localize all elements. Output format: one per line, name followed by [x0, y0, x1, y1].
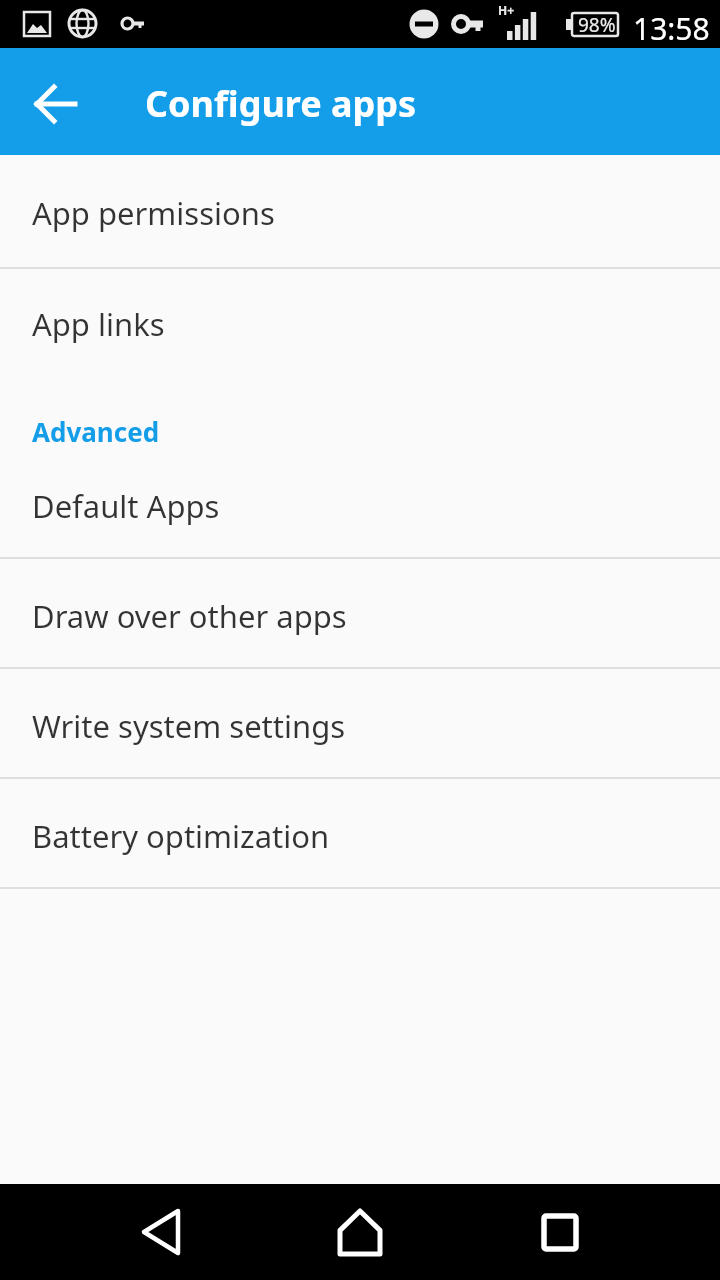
- staticText: Advanced: [32, 414, 160, 449]
- button[interactable]: [121, 1192, 201, 1272]
- staticText: App permissions: [32, 192, 275, 234]
- button[interactable]: Write system settings: [0, 669, 720, 777]
- staticText: Write system settings: [32, 705, 346, 747]
- staticText: Configure apps: [145, 79, 417, 128]
- staticText: App links: [32, 303, 165, 345]
- button[interactable]: [520, 1192, 600, 1272]
- button[interactable]: [20, 68, 92, 140]
- button[interactable]: App links: [0, 269, 720, 381]
- staticText: Battery optimization: [32, 815, 330, 857]
- button[interactable]: Draw over other apps: [0, 559, 720, 667]
- staticText: Default Apps: [32, 485, 220, 527]
- staticText: Draw over other apps: [32, 595, 347, 637]
- staticText: 13:58: [633, 8, 710, 49]
- button[interactable]: Battery optimization: [0, 779, 720, 887]
- staticText: 98%: [578, 12, 616, 38]
- button[interactable]: Default Apps: [0, 449, 720, 557]
- button[interactable]: App permissions: [0, 155, 720, 267]
- staticText: H+: [498, 2, 515, 18]
- button[interactable]: [320, 1192, 400, 1272]
